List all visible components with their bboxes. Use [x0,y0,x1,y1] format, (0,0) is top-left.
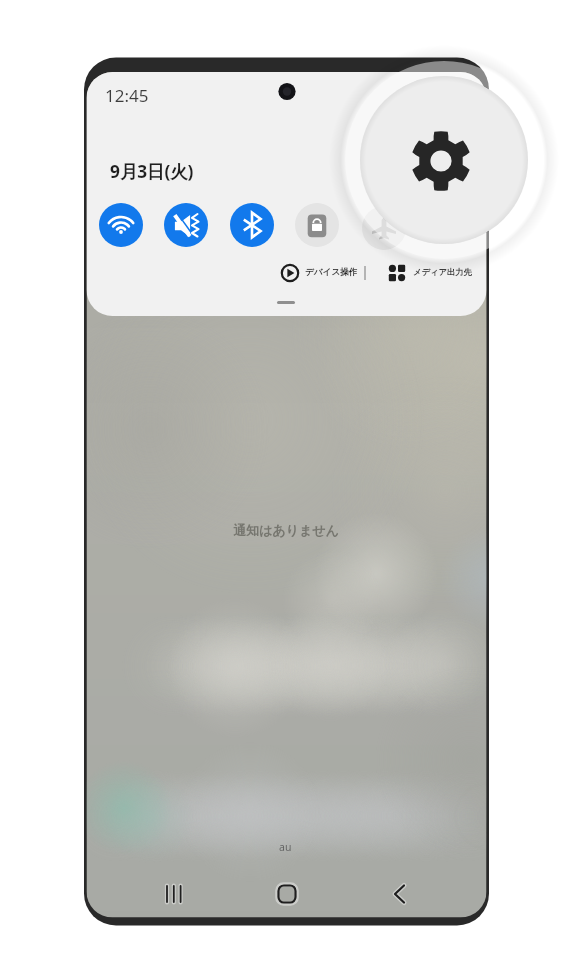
button[interactable]: デバイス操作 [278,262,360,286]
button[interactable]: Bluetooth [230,203,274,247]
staticText: デバイス操作 [305,267,358,278]
button[interactable]: Auto rotate [295,203,339,247]
button[interactable]: Airplane mode [361,203,405,247]
staticText: メディア出力先 [413,267,472,277]
button[interactable]: Back [382,878,416,912]
staticText: au [279,840,292,854]
button[interactable]: Wi-Fi [99,203,143,247]
button[interactable]: Settings [400,116,488,204]
staticText: 9月3日(火) [110,160,194,184]
staticText: 通知はありません [233,522,339,538]
button[interactable]: メディア出力先 [386,262,474,286]
button[interactable]: Recents [155,878,189,912]
button[interactable]: Sound mode [164,203,208,247]
button[interactable]: Home [270,878,304,912]
staticText: 12:45 [105,84,149,107]
